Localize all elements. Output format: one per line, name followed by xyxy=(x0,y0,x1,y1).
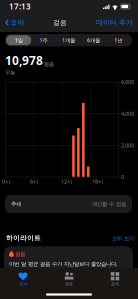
button[interactable]: 추세 xyxy=(5,195,132,213)
staticText: 계산할 수 없음 xyxy=(92,201,126,207)
staticText: 18시 xyxy=(92,178,103,185)
staticText: 1주 xyxy=(40,37,48,44)
staticText: 걸음 xyxy=(44,61,54,67)
staticText: 공유 xyxy=(65,281,73,286)
button[interactable]: 1년 xyxy=(106,35,131,45)
staticText: 검색 xyxy=(111,281,119,286)
staticText: 4,000 xyxy=(121,110,134,117)
button[interactable]: 검색 xyxy=(92,268,138,290)
staticText: 17:13 xyxy=(9,1,31,12)
staticText: 1일 xyxy=(15,37,23,44)
staticText: 2,000 xyxy=(121,142,134,149)
staticText: 이번 달 평균 걸음 수가 지난달보다 좋았습니다. xyxy=(9,260,117,267)
button[interactable]: 6개월 xyxy=(81,35,106,45)
button[interactable]: 1개월 xyxy=(56,35,81,45)
button[interactable]: 걸음 xyxy=(4,246,133,272)
staticText: 추세 xyxy=(11,201,21,207)
staticText: 요약 xyxy=(10,18,24,27)
staticText: 걸음 xyxy=(53,18,67,27)
button[interactable]: 요약 xyxy=(0,268,46,290)
staticText: 오늘 xyxy=(5,69,15,75)
button[interactable]: 데이터 추가 xyxy=(94,14,135,31)
staticText: 걸음 xyxy=(15,251,25,257)
staticText: 12시 xyxy=(61,178,72,185)
staticText: 하이라이트 xyxy=(6,234,41,242)
staticText: 6개월 xyxy=(87,37,100,44)
button[interactable]: 공유 xyxy=(46,268,92,290)
staticText: 6,000 xyxy=(121,78,134,86)
staticText: 1년 xyxy=(114,37,122,44)
button[interactable]: 1일 xyxy=(6,35,31,45)
staticText: 0시 xyxy=(2,178,10,185)
staticText: 6시 xyxy=(30,178,38,185)
staticText: 0 xyxy=(121,173,124,181)
staticText: 모두 보기 xyxy=(112,235,134,242)
button[interactable]: 요약 xyxy=(3,14,26,31)
staticText: 1개월 xyxy=(62,37,75,44)
staticText: 데이터 추가 xyxy=(96,18,133,27)
button[interactable]: 1주 xyxy=(31,35,56,45)
staticText: 10,978 xyxy=(5,52,43,68)
staticText: 요약 xyxy=(19,281,27,286)
button[interactable]: 모두 보기 xyxy=(112,235,134,242)
